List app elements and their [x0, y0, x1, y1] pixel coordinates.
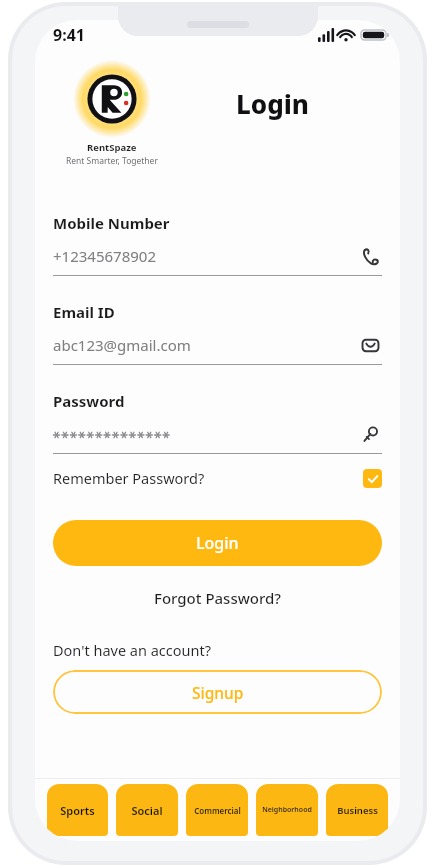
staticText: Sports	[60, 803, 95, 818]
staticText: +12345678902	[53, 246, 156, 266]
button[interactable]: Email	[358, 333, 382, 357]
staticText: Login	[196, 532, 239, 554]
button[interactable]: Phone	[358, 244, 382, 268]
staticText: Commercial	[194, 805, 241, 816]
staticText: Password	[53, 391, 125, 411]
staticText: Email ID	[53, 302, 115, 322]
button[interactable]: Forgot Password?	[150, 584, 286, 612]
button[interactable]: abc123@gmail.com	[53, 333, 382, 357]
staticText: 9:41	[53, 24, 85, 46]
button[interactable]: Sports	[47, 784, 108, 836]
button[interactable]: Remember Password?	[53, 468, 382, 488]
staticText: Business	[337, 804, 378, 817]
staticText: Neighborhood	[262, 805, 312, 815]
button[interactable]: Show password	[53, 422, 382, 446]
button[interactable]: Neighborhood	[256, 784, 318, 836]
staticText: Don't have an account?	[53, 640, 211, 660]
staticText: Login	[236, 86, 309, 121]
button[interactable]: +12345678902	[53, 244, 382, 268]
button[interactable]: Show password	[358, 422, 382, 446]
staticText: abc123@gmail.com	[53, 335, 191, 355]
button[interactable]: Social	[116, 784, 178, 836]
staticText: Mobile Number	[53, 213, 170, 233]
staticText: Remember Password?	[53, 468, 205, 488]
button[interactable]: Signup	[53, 670, 382, 714]
button[interactable]: Commercial	[186, 784, 248, 836]
button[interactable]: Login	[53, 520, 382, 566]
button[interactable]: Business	[326, 784, 388, 836]
staticText: Social	[131, 803, 163, 818]
staticText: RentSpaze	[87, 141, 137, 154]
staticText: Signup	[192, 682, 244, 703]
staticText: Rent Smarter, Together	[66, 155, 158, 167]
